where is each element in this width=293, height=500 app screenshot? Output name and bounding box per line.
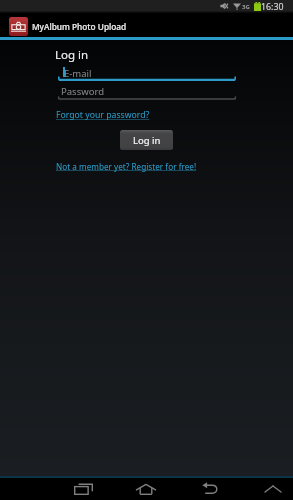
button[interactable]: MyAlbum app icon [9, 17, 28, 36]
button[interactable]: Password [58, 84, 236, 100]
button[interactable]: Recents [59, 478, 107, 500]
button[interactable]: E-mail [58, 63, 236, 81]
button[interactable]: Home [122, 478, 170, 500]
staticText: Password [61, 85, 104, 98]
button[interactable]: Log in [120, 130, 173, 150]
staticText: MyAlbum Photo Upload [32, 21, 127, 32]
staticText: 3G [242, 3, 250, 11]
staticText: Log in [55, 47, 89, 63]
button[interactable]: Menu [249, 478, 293, 500]
staticText: Log in [133, 134, 161, 147]
button[interactable]: Not a member yet? Register for free! [56, 161, 197, 172]
staticText: 16:30 [261, 1, 284, 13]
button[interactable]: Back [186, 478, 234, 500]
button[interactable]: Forgot your password? [56, 109, 150, 121]
staticText: E-mail [64, 67, 92, 80]
